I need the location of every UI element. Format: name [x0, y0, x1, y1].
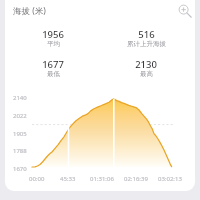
staticText: 平均 [47, 40, 60, 48]
staticText: 最低 [47, 70, 60, 78]
staticText: 1677 [42, 58, 64, 71]
staticText: 2022 [13, 112, 27, 120]
staticText: 02:16:39 [124, 175, 148, 183]
staticText: 45:33 [60, 175, 76, 183]
staticText: 1905 [13, 130, 27, 138]
staticText: 1956 [42, 28, 64, 41]
staticText: 累计上升海拔 [127, 40, 166, 48]
button[interactable]: Zoom in [177, 3, 192, 18]
staticText: 01:31:06 [90, 175, 114, 183]
staticText: 最高 [140, 70, 153, 78]
staticText: 03:02:13 [158, 175, 182, 183]
staticText: 2130 [135, 58, 157, 71]
staticText: 海拔 (米) [13, 5, 46, 17]
staticText: 1670 [13, 165, 27, 173]
staticText: 1788 [13, 147, 27, 155]
staticText: 516 [138, 28, 155, 41]
staticText: 00:00 [29, 175, 45, 183]
staticText: 2140 [13, 94, 27, 102]
